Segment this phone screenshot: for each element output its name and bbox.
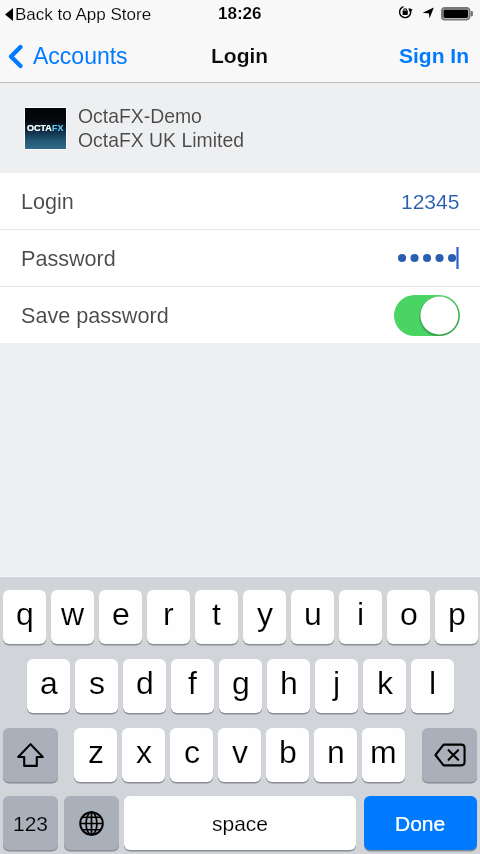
button[interactable]: a — [27, 659, 70, 713]
button[interactable]: t — [195, 590, 238, 644]
button[interactable]: 123 — [3, 796, 58, 850]
staticText: 12345 — [401, 190, 460, 213]
button[interactable]: OCTA — [0, 83, 480, 173]
staticText: b — [279, 734, 297, 770]
staticText: o — [400, 596, 418, 632]
staticText: z — [88, 734, 104, 770]
button[interactable]: n — [314, 728, 357, 782]
staticText: OCTA — [27, 123, 52, 133]
staticText: p — [448, 596, 466, 632]
staticText: m — [370, 734, 397, 770]
button[interactable]: Sign In — [387, 36, 480, 75]
button[interactable]: Login — [0, 173, 480, 229]
button[interactable]: Shift — [3, 728, 58, 782]
staticText: x — [136, 734, 152, 770]
staticText: Back to App Store — [15, 5, 152, 24]
staticText: 18:26 — [218, 4, 262, 23]
button[interactable]: d — [123, 659, 166, 713]
staticText: y — [257, 596, 273, 632]
button[interactable]: h — [267, 659, 310, 713]
button[interactable]: Backspace — [422, 728, 477, 782]
button[interactable]: space — [124, 796, 356, 850]
button[interactable]: u — [291, 590, 334, 644]
button[interactable]: i — [339, 590, 382, 644]
staticText: 123 — [13, 812, 49, 835]
staticText: v — [232, 734, 248, 770]
staticText: Login — [211, 44, 269, 67]
button[interactable]: e — [99, 590, 142, 644]
button[interactable]: p — [435, 590, 478, 644]
staticText: k — [377, 665, 393, 701]
staticText: space — [212, 812, 269, 835]
staticText: u — [304, 596, 322, 632]
staticText: q — [16, 596, 34, 632]
button[interactable]: f — [171, 659, 214, 713]
button[interactable]: m — [362, 728, 405, 782]
staticText: Sign In — [399, 44, 469, 67]
button[interactable]: k — [363, 659, 406, 713]
staticText: h — [280, 665, 298, 701]
button[interactable]: s — [75, 659, 118, 713]
staticText: d — [136, 665, 154, 701]
staticText: i — [357, 596, 365, 632]
staticText: g — [232, 665, 250, 701]
staticText: c — [184, 734, 200, 770]
button[interactable]: v — [218, 728, 261, 782]
button[interactable]: y — [243, 590, 286, 644]
staticText: OctaFX-Demo — [78, 105, 202, 127]
staticText: l — [429, 665, 437, 701]
staticText: t — [212, 596, 221, 632]
button[interactable]: z — [74, 728, 117, 782]
button[interactable]: Password — [0, 230, 480, 286]
staticText: e — [112, 596, 130, 632]
staticText: Password — [21, 246, 116, 270]
staticText: w — [61, 596, 85, 632]
staticText: FX — [52, 123, 64, 133]
button[interactable]: j — [315, 659, 358, 713]
button[interactable]: Save password toggle — [394, 295, 460, 336]
button[interactable]: Accounts — [0, 37, 136, 75]
button[interactable]: b — [266, 728, 309, 782]
staticText: Accounts — [33, 43, 128, 69]
button[interactable]: w — [51, 590, 94, 644]
button[interactable]: Save password — [0, 287, 480, 343]
staticText: s — [89, 665, 105, 701]
button[interactable]: c — [170, 728, 213, 782]
button[interactable]: r — [147, 590, 190, 644]
staticText: f — [188, 665, 197, 701]
staticText: Done — [395, 812, 446, 835]
button[interactable]: x — [122, 728, 165, 782]
staticText: n — [327, 734, 345, 770]
staticText: j — [333, 665, 341, 701]
button[interactable]: o — [387, 590, 430, 644]
staticText: Save password — [21, 303, 169, 327]
staticText: OctaFX UK Limited — [78, 129, 244, 151]
button[interactable]: Done — [364, 796, 477, 850]
button[interactable]: g — [219, 659, 262, 713]
button[interactable]: l — [411, 659, 454, 713]
staticText: r — [163, 596, 174, 632]
staticText: a — [40, 665, 58, 701]
button[interactable]: q — [3, 590, 46, 644]
staticText: Login — [21, 189, 74, 213]
button[interactable]: Switch keyboard — [64, 796, 119, 850]
